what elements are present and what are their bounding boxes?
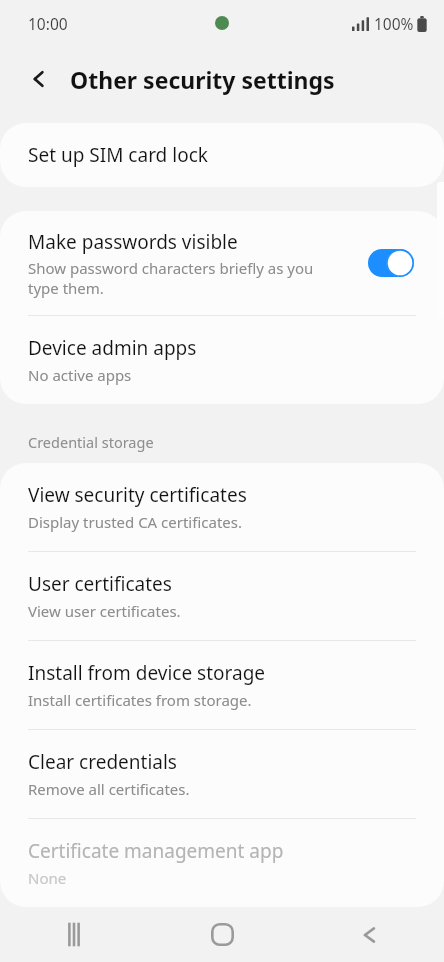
button[interactable]: Back xyxy=(18,57,62,101)
button[interactable]: Make passwords visible xyxy=(0,211,444,315)
staticText: 100% xyxy=(374,13,414,34)
staticText: View security certificates xyxy=(28,482,247,508)
button[interactable]: Recent apps xyxy=(0,907,148,962)
staticText: 10:00 xyxy=(28,13,68,34)
staticText: Credential storage xyxy=(28,432,154,452)
staticText: Clear credentials xyxy=(28,749,177,775)
staticText: Install certificates from storage. xyxy=(28,690,252,710)
button[interactable]: Install from device storage xyxy=(0,641,444,729)
button[interactable]: Make passwords visible toggle xyxy=(368,249,414,277)
button[interactable]: Device admin apps xyxy=(0,316,444,404)
staticText: None xyxy=(28,868,67,888)
staticText: Device admin apps xyxy=(28,335,197,361)
button[interactable]: User certificates xyxy=(0,552,444,640)
staticText: No active apps xyxy=(28,365,132,385)
staticText: User certificates xyxy=(28,571,172,597)
button[interactable]: Home xyxy=(148,907,296,962)
button[interactable]: Clear credentials xyxy=(0,730,444,818)
staticText: Display trusted CA certificates. xyxy=(28,512,242,532)
staticText: Remove all certificates. xyxy=(28,779,190,799)
button[interactable]: Back xyxy=(296,907,444,962)
staticText: Set up SIM card lock xyxy=(28,142,208,168)
button[interactable]: Certificate management app xyxy=(0,819,444,907)
staticText: Make passwords visible xyxy=(28,229,238,255)
button[interactable]: View security certificates xyxy=(0,463,444,551)
button[interactable]: Set up SIM card lock xyxy=(0,123,444,187)
staticText: Other security settings xyxy=(70,64,335,95)
staticText: Certificate management app xyxy=(28,838,284,864)
staticText: Show password characters briefly as you … xyxy=(28,258,314,298)
staticText: View user certificates. xyxy=(28,601,181,621)
staticText: Install from device storage xyxy=(28,660,266,686)
